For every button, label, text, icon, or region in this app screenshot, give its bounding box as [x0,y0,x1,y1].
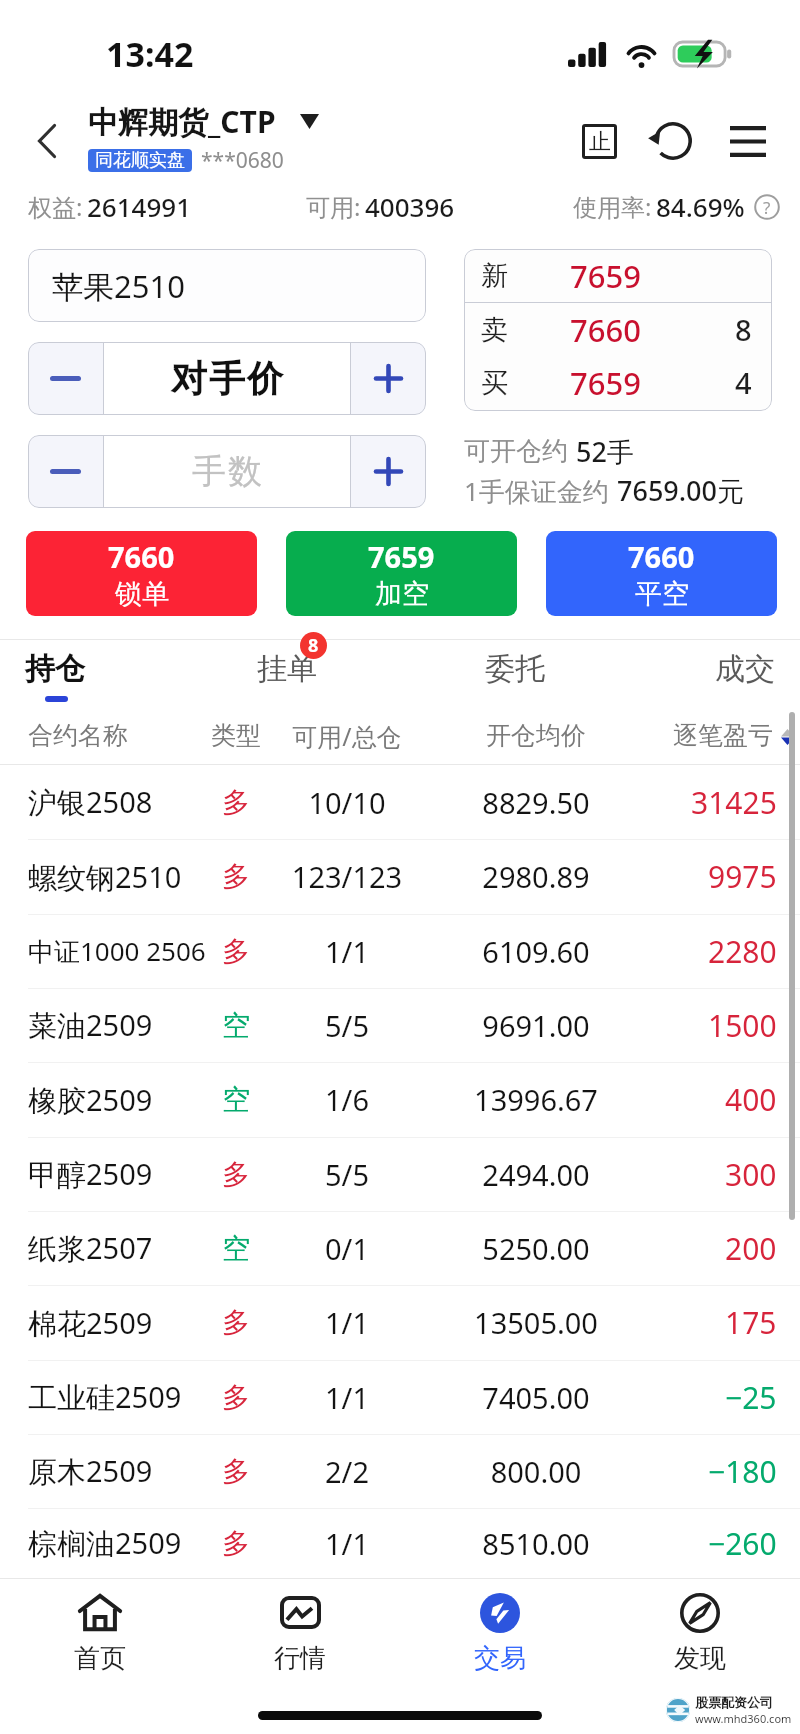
button[interactable]: 挂单 [227,640,347,706]
staticText: 1/6 [217,1080,477,1119]
button[interactable]: Decrease [28,342,103,415]
staticText: 9691.00 [406,1006,666,1045]
staticText: 可用/总仓 [217,719,477,753]
staticText: 螺纹钢2510 [28,857,182,897]
staticText: 8 [735,310,752,349]
staticText: www.mhd360.com [695,1711,792,1726]
button[interactable]: Menu [715,108,781,174]
staticText: 多 [106,1305,366,1340]
staticText: 发现 [674,1642,726,1675]
button[interactable]: 手数 [104,435,350,508]
staticText: 中辉期货_CTP [88,101,276,142]
button[interactable]: 交易 [400,1579,600,1675]
staticText: 手数 [191,450,263,493]
staticText: 苹果2510 [52,265,185,307]
staticText: 400396 [365,189,455,224]
staticText: 多 [106,859,366,894]
staticText: 4 [735,363,752,402]
staticText: 可开仓约 [464,435,568,468]
staticText: 工业硅2509 [28,1377,182,1417]
staticText: 多 [106,1380,366,1415]
staticText: 1/1 [217,1378,477,1417]
staticText: 84.69% [656,189,745,224]
staticText: 13996.67 [406,1080,666,1119]
staticText: 多 [106,785,366,820]
button[interactable]: 螺纹钢2510 [0,839,800,914]
button[interactable]: 委托 [455,640,575,706]
staticText: 8829.50 [406,783,666,822]
staticText: 123/123 [217,857,477,896]
staticText: ? [763,196,771,219]
staticText: 7660 [108,537,175,576]
staticText: 7659.00元 [617,472,745,509]
button[interactable]: Back [5,99,89,183]
button[interactable]: 甲醇2509 [0,1137,800,1211]
staticText: 纸浆2507 [28,1228,153,1268]
staticText: 新 [481,259,508,293]
staticText: 52手 [576,433,634,470]
button[interactable]: 棉花2509 [0,1285,800,1360]
staticText: ***0680 [201,146,284,175]
button[interactable]: 橡胶2509 [0,1062,800,1137]
button[interactable]: 行情 [200,1579,400,1675]
button[interactable]: Decrease [28,435,103,508]
button[interactable]: 菜油2509 [0,988,800,1062]
staticText: 甲醇2509 [28,1154,153,1194]
button[interactable]: 持仓 [0,640,115,706]
button[interactable]: 7660 [26,531,257,616]
staticText: 多 [106,934,366,969]
staticText: 7659 [570,362,641,404]
staticText: 5/5 [217,1006,477,1045]
staticText: 挂单 [257,650,317,688]
staticText: 13:42 [106,31,194,77]
staticText: 中证1000 2506 [28,933,206,969]
staticText: 股票配资公司 [695,1694,773,1710]
button[interactable]: 工业硅2509 [0,1360,800,1434]
staticText: 9975 [708,856,777,897]
staticText: −25 [725,1377,777,1418]
button[interactable]: 7660 [546,531,777,616]
button[interactable]: 7659 [286,531,517,616]
staticText: 多 [106,1526,366,1561]
staticText: 委托 [485,650,545,688]
button[interactable]: 棕榈油2509 [0,1508,800,1578]
staticText: 13505.00 [406,1303,666,1342]
staticText: 10/10 [217,783,477,822]
staticText: 1/1 [217,1303,477,1342]
staticText: 1手保证金约 [464,473,609,509]
staticText: 合约名称 [28,720,128,751]
button[interactable]: Refresh [640,108,706,174]
staticText: 平空 [635,577,689,611]
staticText: 2614991 [87,189,192,224]
staticText: −260 [708,1523,777,1564]
button[interactable]: 中证1000 2506 [0,914,800,988]
button[interactable]: 苹果2510 [28,249,426,322]
button[interactable]: Increase [351,342,426,415]
button[interactable]: 发现 [600,1579,800,1675]
button[interactable]: 原木2509 [0,1434,800,1508]
staticText: 行情 [274,1642,326,1675]
staticText: 开仓均价 [406,720,666,751]
button[interactable]: 沪银2508 [0,765,800,839]
staticText: 菜油2509 [28,1005,153,1045]
staticText: −180 [708,1451,777,1492]
staticText: 5/5 [217,1155,477,1194]
staticText: 棉花2509 [28,1303,153,1343]
staticText: 加空 [375,577,429,611]
button[interactable]: Increase [351,435,426,508]
staticText: 7660 [628,537,695,576]
staticText: 2494.00 [406,1155,666,1194]
staticText: 止 [589,128,611,156]
button[interactable]: 成交 [685,640,800,706]
staticText: 2280 [708,931,777,972]
button[interactable]: 纸浆2507 [0,1211,800,1285]
button[interactable]: 对手价 [104,342,350,415]
staticText: 8 [308,633,319,658]
button[interactable]: 首页 [0,1579,200,1675]
staticText: 棕榈油2509 [28,1523,182,1563]
staticText: 0/1 [217,1229,477,1268]
staticText: 200 [725,1228,777,1269]
staticText: 300 [725,1154,777,1195]
button[interactable]: Stop loss order [566,108,632,174]
staticText: 多 [106,1454,366,1489]
